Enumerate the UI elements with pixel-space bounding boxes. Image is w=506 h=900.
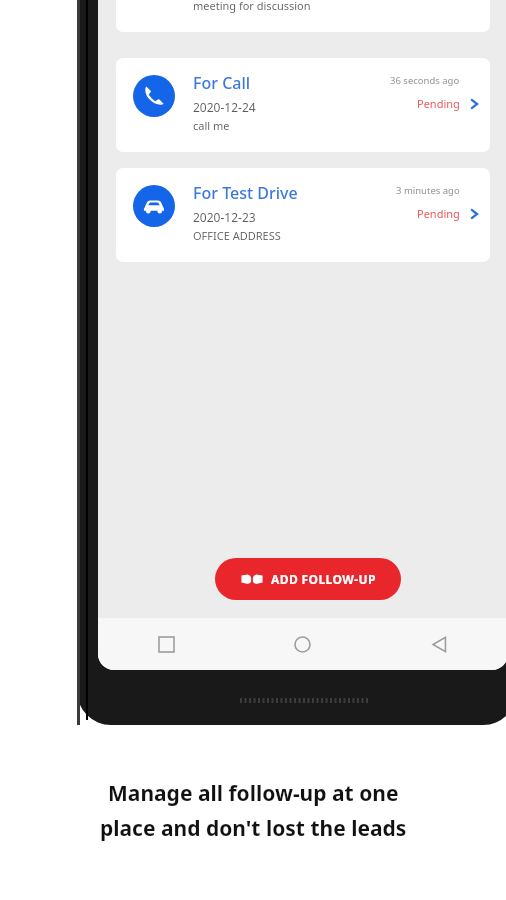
button[interactable]: For Test Drive [116,168,490,262]
staticText: place and don't lost the leads [100,814,407,843]
button[interactable]: ADD FOLLOW-UP [215,558,401,600]
staticText: call me [193,118,230,133]
button[interactable]: Recent apps [98,618,234,670]
button[interactable]: For Meeting [116,0,490,32]
staticText: OFFICE ADDRESS [193,228,281,243]
staticText: For Call [193,72,251,94]
staticText: meeting for discussion [193,0,311,13]
staticText: For Test Drive [193,182,298,204]
staticText: ADD FOLLOW-UP [271,571,376,587]
staticText: Pending [417,206,460,221]
staticText: Manage all follow-up at one [108,779,399,808]
button[interactable]: Open details [464,94,484,114]
button[interactable]: Back [371,618,506,670]
button[interactable]: Home [234,618,371,670]
staticText: 36 seconds ago [390,74,460,87]
button[interactable]: For Call [116,58,490,152]
staticText: 2020-12-24 [193,99,256,115]
staticText: 2020-12-23 [193,209,256,225]
staticText: 3 minutes ago [396,184,460,197]
button[interactable]: Open details [464,204,484,224]
staticText: Pending [417,96,460,111]
